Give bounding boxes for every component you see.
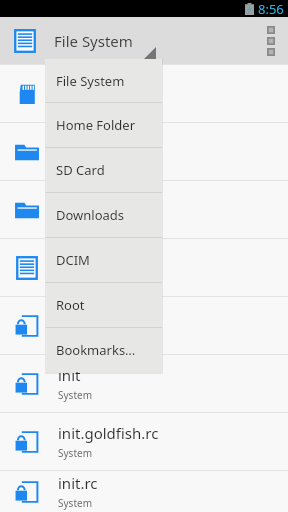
staticText: File System xyxy=(54,31,133,51)
staticText: Root xyxy=(56,296,162,314)
staticText: init.goldfish.rc xyxy=(58,423,159,443)
button[interactable]: charger xyxy=(0,239,288,296)
staticText: config xyxy=(58,307,102,327)
button[interactable]: init.rc xyxy=(0,471,288,512)
button[interactable]: acct xyxy=(0,123,288,180)
staticText: charger xyxy=(58,249,113,269)
button[interactable]: init xyxy=(0,355,288,412)
button[interactable]: Bookmarks… xyxy=(45,328,162,372)
button[interactable]: cache xyxy=(0,181,288,238)
button[interactable]: DCIM xyxy=(45,238,162,282)
staticText: System xyxy=(58,446,92,460)
staticText: File System xyxy=(56,72,162,90)
staticText: System xyxy=(58,388,92,402)
staticText: DCIM xyxy=(56,251,162,269)
staticText: Downloads xyxy=(56,206,162,224)
button[interactable]: File System xyxy=(54,31,254,51)
staticText: init.rc xyxy=(58,473,98,493)
button[interactable]: init.goldfish.rc xyxy=(0,413,288,470)
staticText: System xyxy=(58,272,92,286)
button[interactable]: config xyxy=(0,297,288,354)
button[interactable]: More options xyxy=(254,17,288,64)
button[interactable]: File System xyxy=(45,59,162,102)
staticText: System xyxy=(58,496,92,510)
button[interactable]: Root xyxy=(45,283,162,327)
staticText: Bookmarks… xyxy=(56,341,162,359)
button[interactable]: Home Folder xyxy=(45,103,162,147)
staticText: 8:56 xyxy=(258,0,284,16)
button[interactable]: SD Card xyxy=(45,148,162,192)
staticText: cache xyxy=(58,200,99,220)
staticText: Home Folder xyxy=(56,116,162,134)
staticText: init xyxy=(58,365,81,385)
staticText: sdcard xyxy=(58,84,106,104)
button[interactable]: App icon xyxy=(12,28,38,54)
button[interactable]: Downloads xyxy=(45,193,162,237)
button[interactable]: sdcard xyxy=(0,65,288,122)
staticText: SD Card xyxy=(56,161,162,179)
staticText: acct xyxy=(58,142,87,162)
